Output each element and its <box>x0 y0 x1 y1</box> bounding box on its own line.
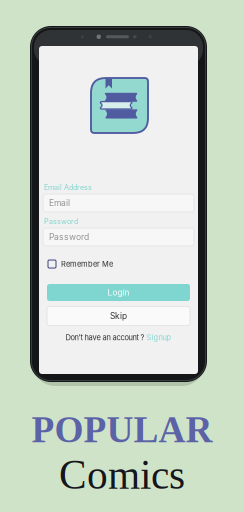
staticText: Skip <box>110 311 127 321</box>
staticText: Email Address <box>44 183 92 192</box>
staticText: Signup <box>146 333 171 342</box>
staticText: Password <box>44 217 78 226</box>
staticText: Don't have an account ? <box>65 333 144 342</box>
staticText: Comics <box>59 452 185 498</box>
staticText: Remember Me <box>61 259 113 268</box>
staticText: Email <box>49 198 70 208</box>
button[interactable]: Login <box>47 284 190 301</box>
staticText: POPULAR <box>31 409 212 450</box>
button[interactable]: Signup <box>146 333 171 342</box>
staticText: Password <box>49 232 89 242</box>
button[interactable]: Remember Me <box>48 259 168 269</box>
button[interactable]: Skip <box>47 306 190 325</box>
staticText: Login <box>107 287 129 297</box>
